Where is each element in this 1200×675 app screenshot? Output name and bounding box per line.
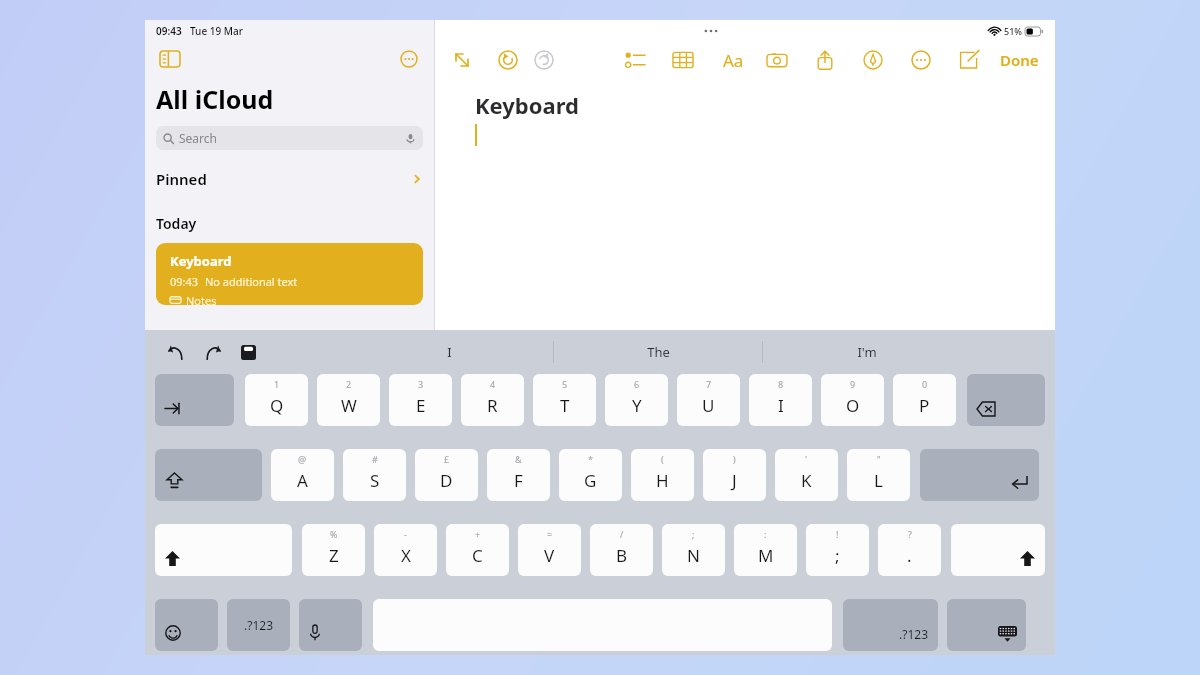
staticText: J	[732, 469, 737, 492]
button[interactable]: #	[343, 449, 406, 501]
button[interactable]: 2	[317, 374, 380, 426]
button[interactable]: Undo	[495, 47, 521, 73]
staticText: 09:43	[156, 24, 182, 38]
button[interactable]: &	[487, 449, 550, 501]
button[interactable]: Search	[156, 126, 423, 150]
staticText: P	[919, 394, 930, 417]
staticText: ?	[908, 528, 912, 540]
button[interactable]	[155, 449, 262, 501]
button[interactable]: .?123	[227, 599, 290, 651]
staticText: Aa	[723, 49, 744, 72]
button[interactable]: Expand	[449, 47, 475, 73]
button[interactable]	[299, 599, 362, 651]
staticText: V	[544, 544, 555, 567]
staticText: )	[733, 453, 736, 465]
staticText: "	[877, 453, 881, 465]
staticText: B	[616, 544, 628, 567]
staticText: £	[444, 453, 450, 465]
button[interactable]: Aa	[718, 47, 748, 73]
button[interactable]: +	[446, 524, 509, 576]
button[interactable]: £	[415, 449, 478, 501]
staticText: 8	[778, 378, 784, 390]
button[interactable]: 6	[605, 374, 668, 426]
button[interactable]	[155, 374, 234, 426]
button[interactable]: 3	[389, 374, 452, 426]
staticText: D	[440, 469, 453, 492]
button[interactable]: )	[703, 449, 766, 501]
button[interactable]: 9	[821, 374, 884, 426]
staticText: (	[661, 453, 664, 465]
button[interactable]: Keyboard	[156, 243, 423, 305]
staticText: 7	[706, 378, 712, 390]
button[interactable]: ;	[662, 524, 725, 576]
button[interactable]: The	[554, 335, 762, 369]
button[interactable]	[947, 599, 1026, 651]
button[interactable]: Compose	[956, 47, 982, 73]
staticText: #	[372, 453, 378, 465]
button[interactable]: =	[518, 524, 581, 576]
button[interactable]: *	[559, 449, 622, 501]
button[interactable]: Table	[670, 47, 696, 73]
staticText: -	[404, 528, 407, 540]
button[interactable]: 7	[677, 374, 740, 426]
staticText: 9	[850, 378, 856, 390]
button[interactable]: Done	[998, 48, 1041, 72]
button[interactable]: :	[734, 524, 797, 576]
staticText: I'm	[857, 343, 877, 361]
button[interactable]: Redo	[531, 47, 557, 73]
button[interactable]: I'm	[763, 335, 971, 369]
staticText: M	[758, 544, 774, 567]
button[interactable]: -	[374, 524, 437, 576]
staticText: '	[805, 453, 808, 465]
button[interactable]: 8	[749, 374, 812, 426]
staticText: =	[547, 528, 553, 540]
staticText: /	[620, 528, 624, 540]
button[interactable]: Paste	[235, 339, 261, 365]
button[interactable]: /	[590, 524, 653, 576]
button[interactable]: !	[806, 524, 869, 576]
button[interactable]: 1	[245, 374, 308, 426]
staticText: 5	[562, 378, 568, 390]
button[interactable]: Shift	[155, 524, 292, 576]
staticText: F	[514, 469, 523, 492]
button[interactable]: (	[631, 449, 694, 501]
button[interactable]: Camera	[764, 47, 790, 73]
button[interactable]: "	[847, 449, 910, 501]
button[interactable]: .?123	[843, 599, 938, 651]
button[interactable]: Redo	[199, 339, 225, 365]
staticText: 6	[634, 378, 640, 390]
button[interactable]: More options	[396, 46, 422, 72]
button[interactable]: More	[908, 47, 934, 73]
button[interactable]: '	[775, 449, 838, 501]
button[interactable]: Toggle sidebar	[157, 46, 183, 72]
button[interactable]: 5	[533, 374, 596, 426]
staticText: K	[801, 469, 812, 492]
staticText: 09:43	[170, 274, 199, 289]
button[interactable]: ?	[878, 524, 941, 576]
staticText: 2	[346, 378, 352, 390]
button[interactable]: Markup	[860, 47, 886, 73]
button[interactable]: Undo	[163, 339, 189, 365]
staticText: S	[370, 469, 380, 492]
staticText: H	[656, 469, 669, 492]
staticText: A	[297, 469, 308, 492]
button[interactable]: 0	[893, 374, 956, 426]
button[interactable]: Shift	[951, 524, 1045, 576]
staticText: All iCloud	[156, 82, 274, 116]
button[interactable]: 4	[461, 374, 524, 426]
button[interactable]: Pinned	[145, 166, 434, 192]
button[interactable]: Checklist	[622, 47, 648, 73]
staticText: %	[330, 528, 338, 540]
button[interactable]: %	[302, 524, 365, 576]
staticText: Z	[329, 544, 339, 567]
staticText: X	[401, 544, 411, 567]
staticText: Q	[270, 394, 284, 417]
button[interactable]	[920, 449, 1039, 501]
button[interactable]: I	[345, 335, 553, 369]
staticText: .?123	[899, 626, 929, 642]
button[interactable]	[155, 599, 218, 651]
button[interactable]: @	[271, 449, 334, 501]
button[interactable]	[967, 374, 1045, 426]
button[interactable]: Share	[812, 47, 838, 73]
